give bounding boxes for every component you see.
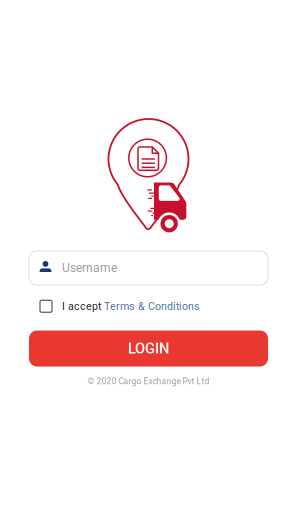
button[interactable]: Username <box>29 251 268 285</box>
staticText: Terms & Conditions <box>104 300 200 312</box>
staticText: LOGIN <box>128 340 169 357</box>
staticText: © 2020 Cargo Exchange Pvt Ltd <box>87 376 209 386</box>
button[interactable]: Terms & Conditions <box>104 300 200 312</box>
button[interactable]: LOGIN <box>29 330 268 366</box>
button[interactable]: Accept terms and conditions <box>40 300 52 312</box>
staticText: Username <box>62 261 117 275</box>
staticText: I accept <box>62 300 104 312</box>
